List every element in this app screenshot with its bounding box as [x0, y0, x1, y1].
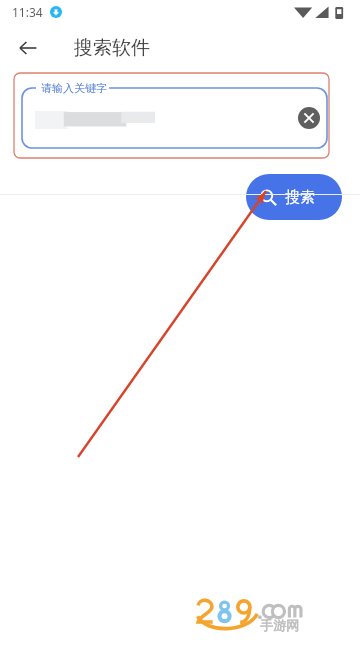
staticText: 手游网: [260, 617, 299, 633]
button[interactable]: 请输入关键字: [22, 88, 327, 148]
staticText: 搜索软件: [74, 36, 150, 60]
button[interactable]: 搜索: [246, 174, 342, 220]
staticText: 搜索: [285, 188, 315, 207]
staticText: 11:34: [12, 4, 43, 20]
button[interactable]: Clear: [298, 107, 320, 129]
staticText: 请输入关键字: [41, 81, 107, 95]
button[interactable]: Back: [8, 28, 48, 68]
